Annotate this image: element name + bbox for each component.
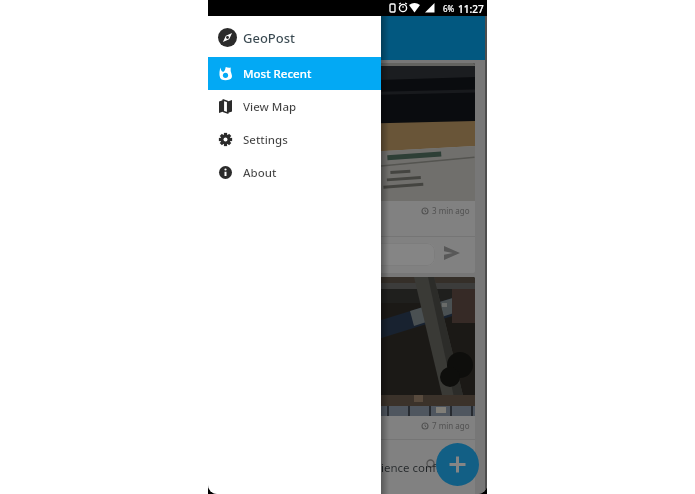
staticText: Settings [243, 132, 288, 148]
staticText: View Map [243, 99, 297, 115]
button[interactable]: About [208, 156, 381, 189]
staticText: 7 min ago [432, 420, 470, 431]
button[interactable]: Settings [208, 123, 381, 156]
staticText: GeoPost [243, 29, 296, 47]
staticText: 3 min ago [432, 205, 470, 216]
button[interactable]: Most Recent [208, 57, 381, 90]
staticText: 6% [443, 3, 455, 14]
staticText: 11:27 [458, 2, 484, 16]
button[interactable] [228, 243, 435, 266]
staticText: About [243, 165, 277, 181]
button[interactable]: View Map [208, 90, 381, 123]
staticText: Most Recent [243, 66, 312, 82]
button[interactable]: 3 min ago [220, 63, 475, 273]
button[interactable]: 7 min ago [220, 277, 475, 494]
button[interactable]: GeoPost [208, 16, 381, 57]
button[interactable] [436, 443, 479, 486]
staticText: ience configur [381, 460, 458, 476]
button[interactable] [444, 246, 460, 260]
